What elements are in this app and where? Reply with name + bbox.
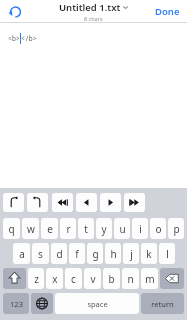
staticText: i <box>139 222 142 236</box>
button[interactable]: r <box>60 218 76 239</box>
button[interactable]: Backspace <box>160 268 184 289</box>
button[interactable]: y <box>96 218 112 239</box>
button[interactable]: w <box>22 218 39 239</box>
staticText: o <box>155 222 162 236</box>
button[interactable]: s <box>32 243 49 264</box>
staticText: p <box>173 222 180 236</box>
staticText: g <box>92 247 99 261</box>
button[interactable]: Undo indent <box>3 193 24 212</box>
button[interactable]: u <box>114 218 130 239</box>
button[interactable]: g <box>87 243 103 264</box>
staticText: m <box>145 272 155 286</box>
button[interactable]: e <box>41 218 58 239</box>
staticText: z <box>34 272 39 286</box>
button[interactable]: Done <box>155 5 180 18</box>
staticText: b <box>108 272 115 286</box>
staticText: return <box>151 299 174 309</box>
button[interactable]: k <box>141 243 157 264</box>
button[interactable]: Jump left <box>52 193 73 212</box>
button[interactable]: b <box>103 268 120 289</box>
button[interactable]: Jump right <box>124 193 145 212</box>
staticText: 8 chars <box>84 15 103 22</box>
button[interactable]: Redo indent <box>27 193 48 212</box>
button[interactable]: p <box>168 218 184 239</box>
button[interactable]: f <box>69 243 85 264</box>
staticText: e <box>47 222 53 236</box>
button[interactable]: <b> <box>0 23 187 188</box>
staticText: x <box>52 272 58 286</box>
staticText: <b> <box>8 34 20 43</box>
staticText: h <box>110 247 117 261</box>
staticText: d <box>56 247 63 261</box>
button[interactable]: n <box>122 268 139 289</box>
button[interactable]: c <box>65 268 82 289</box>
button[interactable]: h <box>105 243 121 264</box>
staticText: t <box>84 222 88 236</box>
staticText: s <box>38 247 43 261</box>
button[interactable]: v <box>84 268 101 289</box>
button[interactable]: i <box>132 218 148 239</box>
button[interactable]: 123 <box>3 293 29 314</box>
button[interactable]: m <box>141 268 158 289</box>
button[interactable]: q <box>3 218 20 239</box>
button[interactable]: Move left <box>76 193 97 212</box>
staticText: 123 <box>10 299 23 309</box>
staticText: r <box>66 222 71 236</box>
staticText: k <box>146 247 152 261</box>
staticText: Untitled 1.txt <box>59 1 121 14</box>
staticText: v <box>90 272 96 286</box>
button[interactable]: l <box>159 243 175 264</box>
button[interactable]: t <box>78 218 94 239</box>
staticText: a <box>19 247 25 261</box>
button[interactable]: x <box>46 268 63 289</box>
button[interactable]: return <box>141 293 184 314</box>
staticText: </b> <box>21 34 37 43</box>
button[interactable]: Change keyboard <box>31 293 53 314</box>
staticText: l <box>166 247 169 261</box>
staticText: n <box>127 272 134 286</box>
button[interactable]: Move right <box>100 193 121 212</box>
staticText: u <box>119 222 126 236</box>
staticText: q <box>8 222 15 236</box>
staticText: j <box>130 247 133 261</box>
staticText: c <box>71 272 76 286</box>
staticText: space <box>87 299 108 309</box>
button[interactable]: j <box>123 243 139 264</box>
button[interactable]: d <box>51 243 67 264</box>
button[interactable]: Shift <box>3 268 26 289</box>
button[interactable]: space <box>55 293 139 314</box>
button[interactable]: o <box>150 218 166 239</box>
staticText: f <box>75 247 79 261</box>
button[interactable]: a <box>13 243 30 264</box>
button[interactable]: Undo <box>6 2 24 20</box>
staticText: y <box>101 222 107 236</box>
staticText: w <box>27 222 35 236</box>
button[interactable]: z <box>28 268 44 289</box>
staticText: Done <box>155 5 180 18</box>
